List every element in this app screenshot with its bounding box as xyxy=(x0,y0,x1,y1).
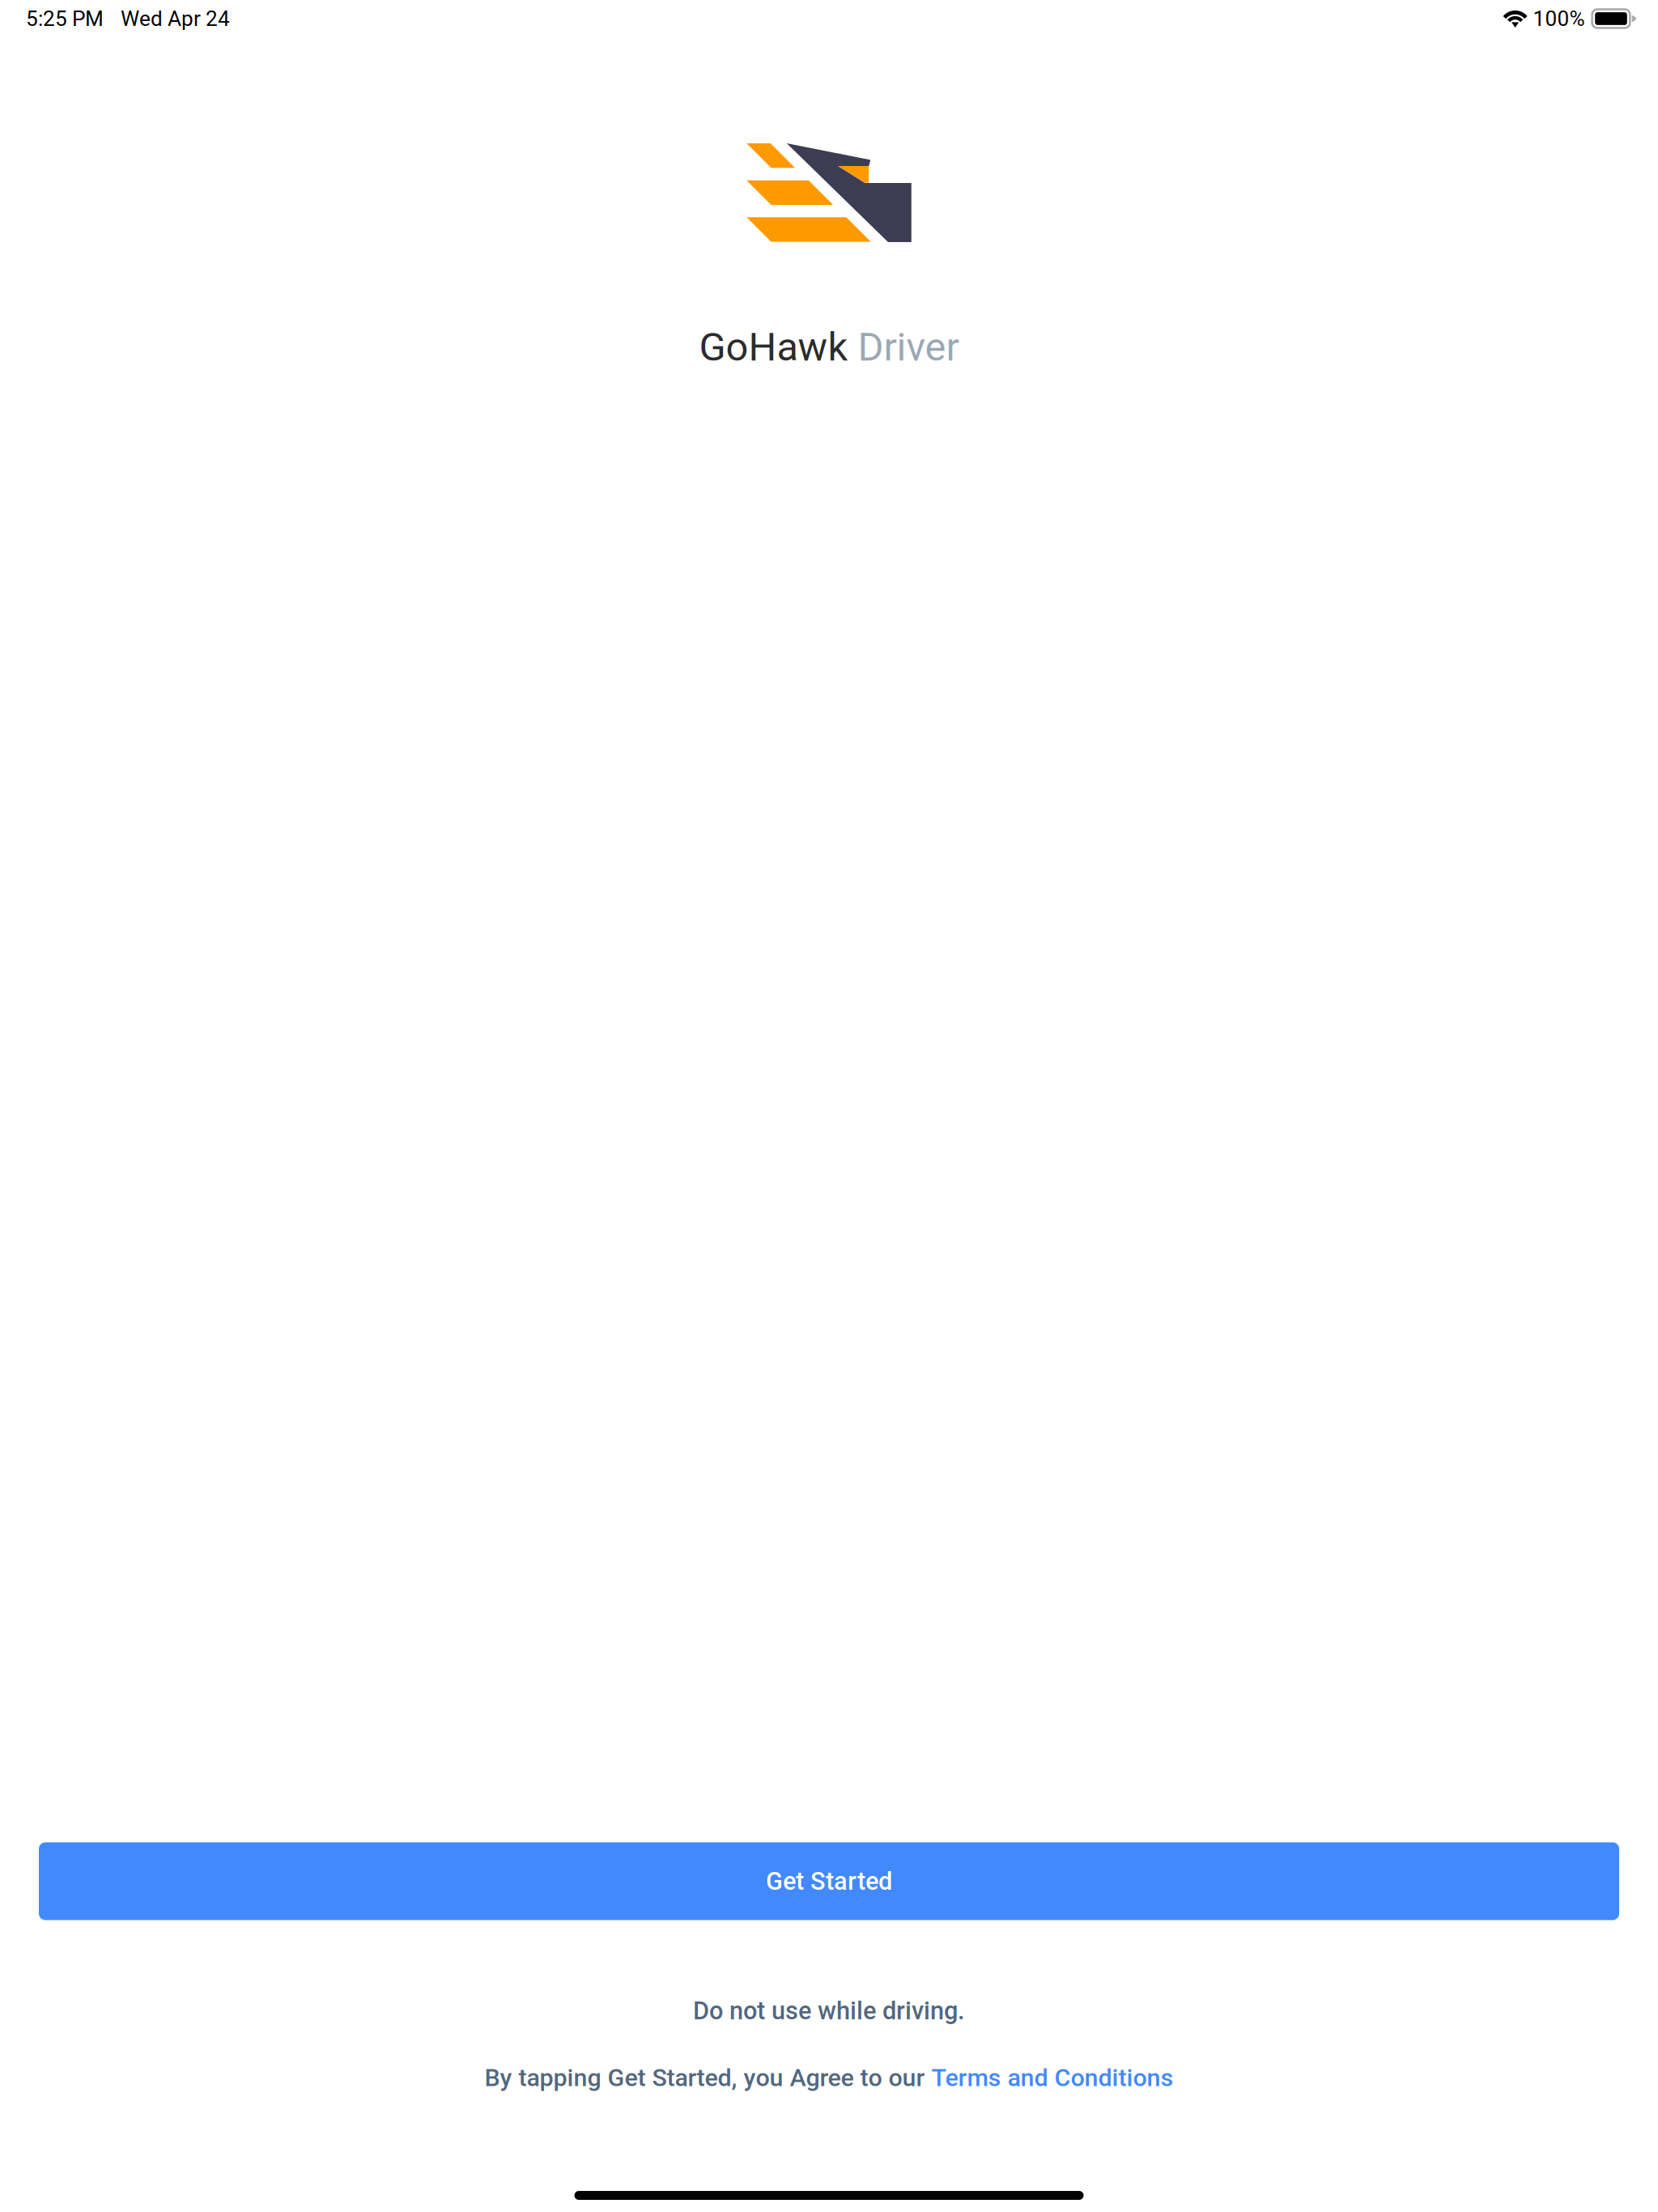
staticText: GoHawk xyxy=(699,324,858,370)
staticText: By tapping Get Started, you Agree to our xyxy=(485,2063,931,2092)
staticText: 100% xyxy=(1533,6,1585,31)
staticText: Get Started xyxy=(766,1867,892,1896)
staticText: Terms and Conditions xyxy=(931,2063,1173,2092)
button[interactable]: Get Started xyxy=(39,1842,1619,1920)
staticText: 5:25 PM xyxy=(26,6,104,31)
staticText: Driver xyxy=(858,324,959,370)
staticText: Wed Apr 24 xyxy=(121,6,230,31)
staticText: Do not use while driving. xyxy=(693,1996,965,2025)
button[interactable]: Terms and Conditions xyxy=(931,2063,1173,2092)
